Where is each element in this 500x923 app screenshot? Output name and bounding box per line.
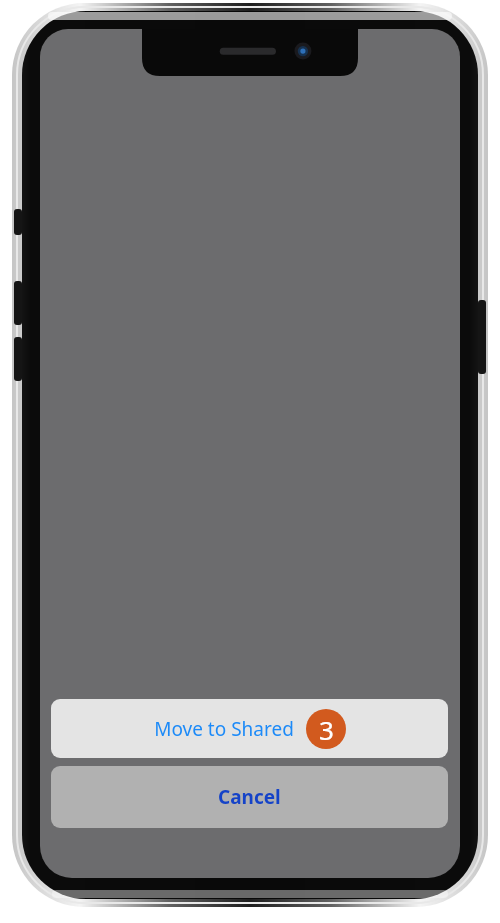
staticText: Move to Shared [154, 716, 294, 742]
button[interactable]: Cancel [51, 766, 448, 828]
staticText: 3 [319, 712, 334, 747]
button[interactable]: Move to Shared [51, 699, 448, 758]
staticText: Cancel [218, 784, 281, 810]
